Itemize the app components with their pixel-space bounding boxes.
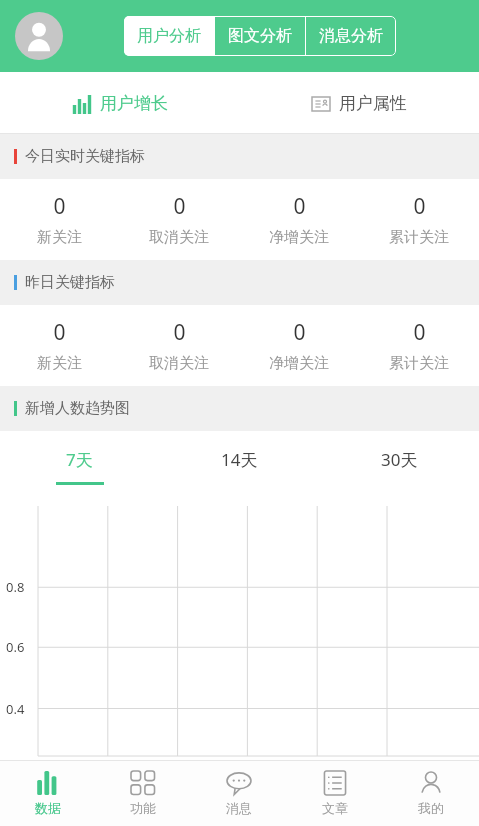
staticText: 0 — [173, 192, 186, 221]
staticText: 用户增长 — [100, 93, 168, 114]
button[interactable]: 7天 — [0, 431, 159, 488]
staticText: 新增人数趋势图 — [25, 399, 130, 418]
staticText: 净增关注 — [269, 228, 329, 247]
staticText: 文章 — [322, 800, 348, 816]
staticText: 0.6 — [6, 638, 25, 656]
staticText: 0 — [413, 192, 426, 221]
staticText: 累计关注 — [389, 354, 449, 373]
button[interactable]: 图文分析 — [215, 16, 305, 56]
button[interactable]: 30天 — [319, 431, 479, 488]
button[interactable]: 消息 — [191, 761, 287, 826]
staticText: 14天 — [221, 448, 258, 471]
button[interactable]: 0 — [119, 305, 239, 386]
button[interactable]: 0 — [359, 305, 479, 386]
staticText: 0 — [173, 318, 186, 347]
staticText: 0 — [53, 318, 66, 347]
button[interactable]: Profile — [15, 12, 63, 60]
staticText: 0 — [293, 318, 306, 347]
button[interactable]: 用户分析 — [124, 16, 214, 56]
staticText: 我的 — [418, 800, 444, 816]
staticText: 数据 — [35, 800, 61, 816]
button[interactable]: 文章 — [287, 761, 383, 826]
staticText: 新关注 — [37, 228, 82, 247]
button[interactable]: 14天 — [159, 431, 319, 488]
button[interactable]: 0 — [0, 305, 119, 386]
staticText: 0.8 — [6, 578, 25, 596]
button[interactable]: 我的 — [383, 761, 479, 826]
button[interactable]: 功能 — [95, 761, 191, 826]
staticText: 7天 — [66, 448, 93, 471]
button[interactable]: 用户增长 — [0, 72, 239, 134]
button[interactable]: 0 — [239, 305, 359, 386]
staticText: 取消关注 — [149, 354, 209, 373]
staticText: 净增关注 — [269, 354, 329, 373]
staticText: 消息 — [226, 800, 252, 816]
staticText: 昨日关键指标 — [25, 273, 115, 292]
staticText: 0 — [53, 192, 66, 221]
button[interactable]: 0 — [0, 179, 119, 260]
staticText: 图文分析 — [228, 26, 292, 46]
staticText: 消息分析 — [319, 26, 383, 46]
staticText: 今日实时关键指标 — [25, 147, 145, 166]
button[interactable]: 0 — [239, 179, 359, 260]
staticText: 30天 — [381, 448, 418, 471]
staticText: 用户属性 — [339, 93, 407, 114]
staticText: 0 — [293, 192, 306, 221]
staticText: 用户分析 — [137, 26, 201, 46]
staticText: 0 — [413, 318, 426, 347]
staticText: 取消关注 — [149, 228, 209, 247]
button[interactable]: 用户属性 — [239, 72, 479, 134]
button[interactable]: 消息分析 — [306, 16, 396, 56]
staticText: 累计关注 — [389, 228, 449, 247]
staticText: 新关注 — [37, 354, 82, 373]
staticText: 功能 — [130, 800, 156, 816]
button[interactable]: 0 — [359, 179, 479, 260]
staticText: 0.4 — [6, 700, 25, 718]
button[interactable]: 0 — [119, 179, 239, 260]
button[interactable]: 数据 — [0, 761, 95, 826]
